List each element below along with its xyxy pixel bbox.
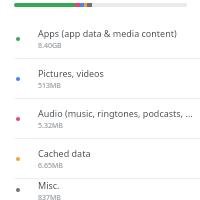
staticText: 837MB: [38, 193, 61, 200]
button[interactable]: Audio (music, ringtones, podcasts, etc.): [0, 99, 200, 138]
staticText: 6.65MB: [38, 161, 63, 171]
staticText: Misc.: [38, 179, 60, 191]
staticText: Apps (app data & media content): [38, 27, 177, 39]
button[interactable]: Misc.: [0, 179, 200, 200]
button[interactable]: Cached data: [0, 139, 200, 178]
staticText: Pictures, videos: [38, 67, 104, 79]
staticText: 8.40GB: [38, 41, 62, 51]
staticText: 5.32MB: [38, 121, 63, 131]
staticText: 513MB: [38, 81, 61, 91]
button[interactable]: Apps (app data & media content): [0, 19, 200, 58]
button[interactable]: [14, 3, 187, 7]
button[interactable]: Pictures, videos: [0, 59, 200, 98]
staticText: Audio (music, ringtones, podcasts, etc.): [38, 107, 194, 119]
staticText: Cached data: [38, 147, 91, 159]
